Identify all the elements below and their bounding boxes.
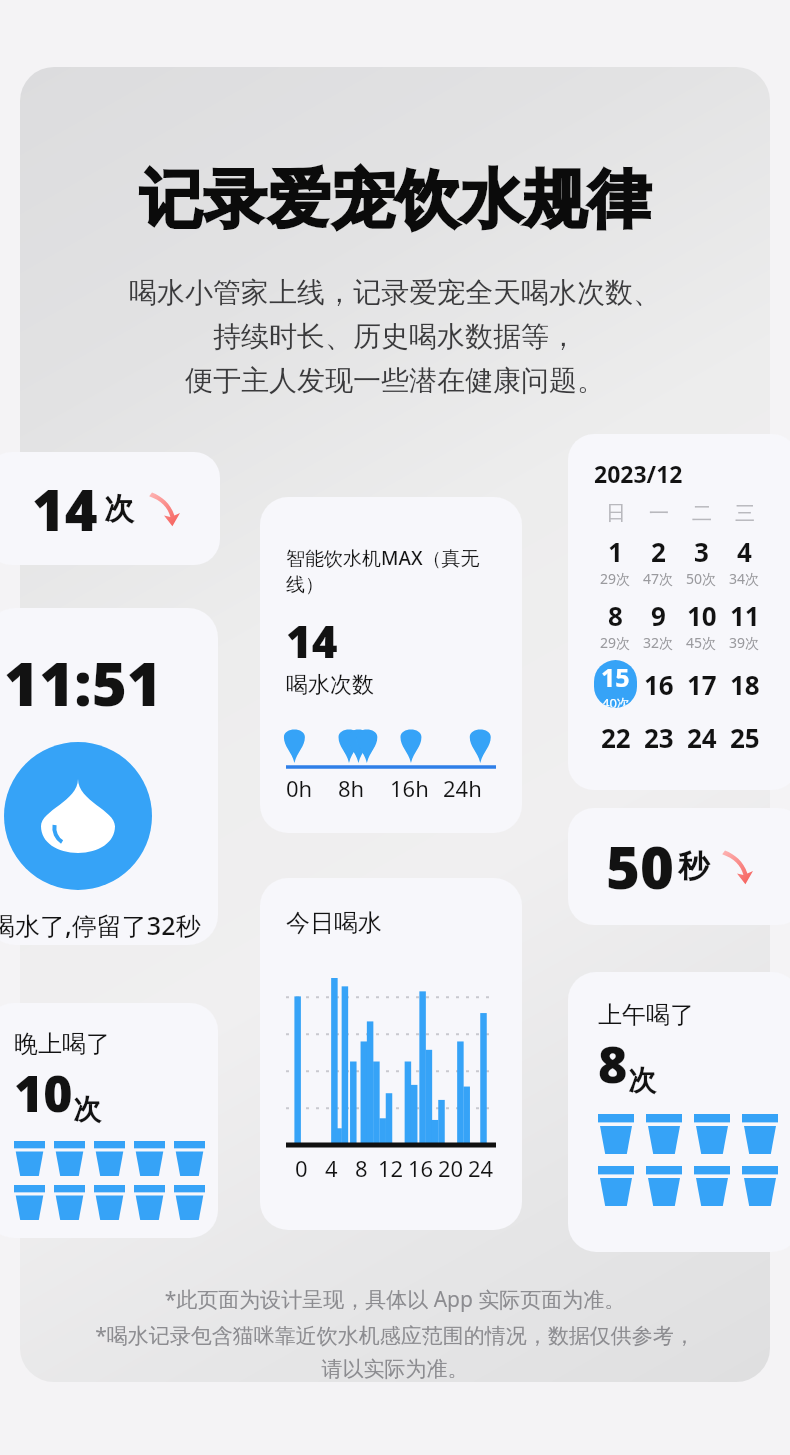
staticText: 8h: [338, 773, 365, 803]
staticText: 24: [468, 1153, 494, 1183]
staticText: 喝水小管家上线，记录爱宠全天喝水次数、 持续时长、历史喝水数据等， 便于主人发现…: [129, 275, 661, 398]
staticText: 10: [687, 598, 717, 633]
staticText: 12: [378, 1153, 404, 1183]
staticText: 47次: [643, 569, 674, 588]
staticText: 记录爱宠饮水规律: [139, 160, 651, 239]
staticText: 16: [408, 1153, 434, 1183]
staticText: 智能饮水机MAX（真无线）: [286, 545, 496, 597]
staticText: 三: [735, 501, 755, 526]
staticText: 日: [606, 501, 626, 526]
staticText: 11:51: [4, 642, 162, 724]
staticText: 秒: [678, 847, 709, 886]
staticText: 喝水了,停留了32秒: [0, 908, 201, 942]
staticText: 次: [628, 1063, 656, 1098]
staticText: 8: [598, 1030, 628, 1098]
staticText: 29次: [600, 633, 631, 652]
button[interactable]: 2023/12: [568, 434, 790, 790]
staticText: 次: [104, 490, 134, 528]
staticText: 0h: [286, 773, 313, 803]
staticText: 14: [286, 611, 338, 671]
staticText: 9: [651, 598, 666, 633]
staticText: 11: [730, 598, 760, 633]
staticText: 4: [325, 1153, 338, 1183]
staticText: 15: [601, 660, 630, 694]
staticText: 2: [651, 534, 666, 569]
staticText: 16h: [390, 773, 429, 803]
staticText: 晚上喝了: [14, 1029, 110, 1059]
button[interactable]: 上午喝了: [568, 972, 790, 1252]
staticText: 50: [606, 827, 674, 906]
staticText: 24: [687, 720, 717, 755]
staticText: 29次: [600, 569, 631, 588]
staticText: 今日喝水: [286, 908, 382, 938]
staticText: 14: [32, 471, 98, 547]
staticText: 二: [692, 501, 712, 526]
staticText: 1: [608, 534, 623, 569]
staticText: 39次: [729, 633, 760, 652]
staticText: 32次: [643, 633, 674, 652]
staticText: 喝水次数: [286, 671, 374, 699]
staticText: 22: [601, 720, 631, 755]
staticText: 23: [644, 720, 674, 755]
button[interactable]: 智能饮水机MAX（真无线）: [260, 497, 522, 833]
staticText: 18: [730, 667, 760, 702]
button[interactable]: 今日喝水: [260, 878, 522, 1230]
staticText: 上午喝了: [598, 1000, 694, 1030]
staticText: 0: [295, 1153, 308, 1183]
staticText: 次: [73, 1092, 101, 1127]
button[interactable]: 14: [0, 452, 220, 565]
button[interactable]: 11:51: [0, 608, 218, 945]
staticText: 16: [644, 667, 674, 702]
staticText: 50次: [686, 569, 717, 588]
staticText: 2023/12: [594, 458, 683, 489]
staticText: 34次: [729, 569, 760, 588]
staticText: 8: [608, 598, 623, 633]
staticText: 45次: [686, 633, 717, 652]
staticText: 25: [730, 720, 760, 755]
button[interactable]: 晚上喝了: [0, 1003, 218, 1238]
staticText: 20: [438, 1153, 464, 1183]
staticText: 8: [355, 1153, 368, 1183]
button[interactable]: 50: [568, 808, 790, 925]
staticText: 一: [649, 501, 669, 526]
staticText: 40次: [602, 694, 630, 708]
staticText: 4: [737, 534, 752, 569]
staticText: 17: [687, 667, 717, 702]
staticText: *此页面为设计呈现，具体以 App 实际页面为准。 *喝水记录包含猫咪靠近饮水机…: [95, 1285, 695, 1383]
staticText: 24h: [443, 773, 482, 803]
staticText: 3: [694, 534, 709, 569]
staticText: 10: [14, 1059, 73, 1127]
